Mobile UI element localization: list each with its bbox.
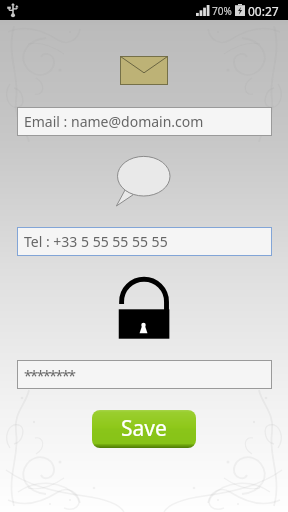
staticText: Tel : +33 5 55 55 55 55 [24,232,168,251]
staticText: 00:27 [248,3,279,19]
button[interactable]: Save [92,410,196,448]
button[interactable]: Email : name@domain.com [17,107,272,136]
other: Email [120,56,168,85]
other: Password [118,276,172,340]
staticText: ******** [24,366,75,385]
other: Message [113,154,175,210]
staticText: Save [121,414,167,443]
button[interactable]: Tel : +33 5 55 55 55 55 [17,227,272,256]
staticText: 70% [212,4,232,18]
button[interactable]: ******** [17,360,272,389]
staticText: Email : name@domain.com [24,112,204,131]
